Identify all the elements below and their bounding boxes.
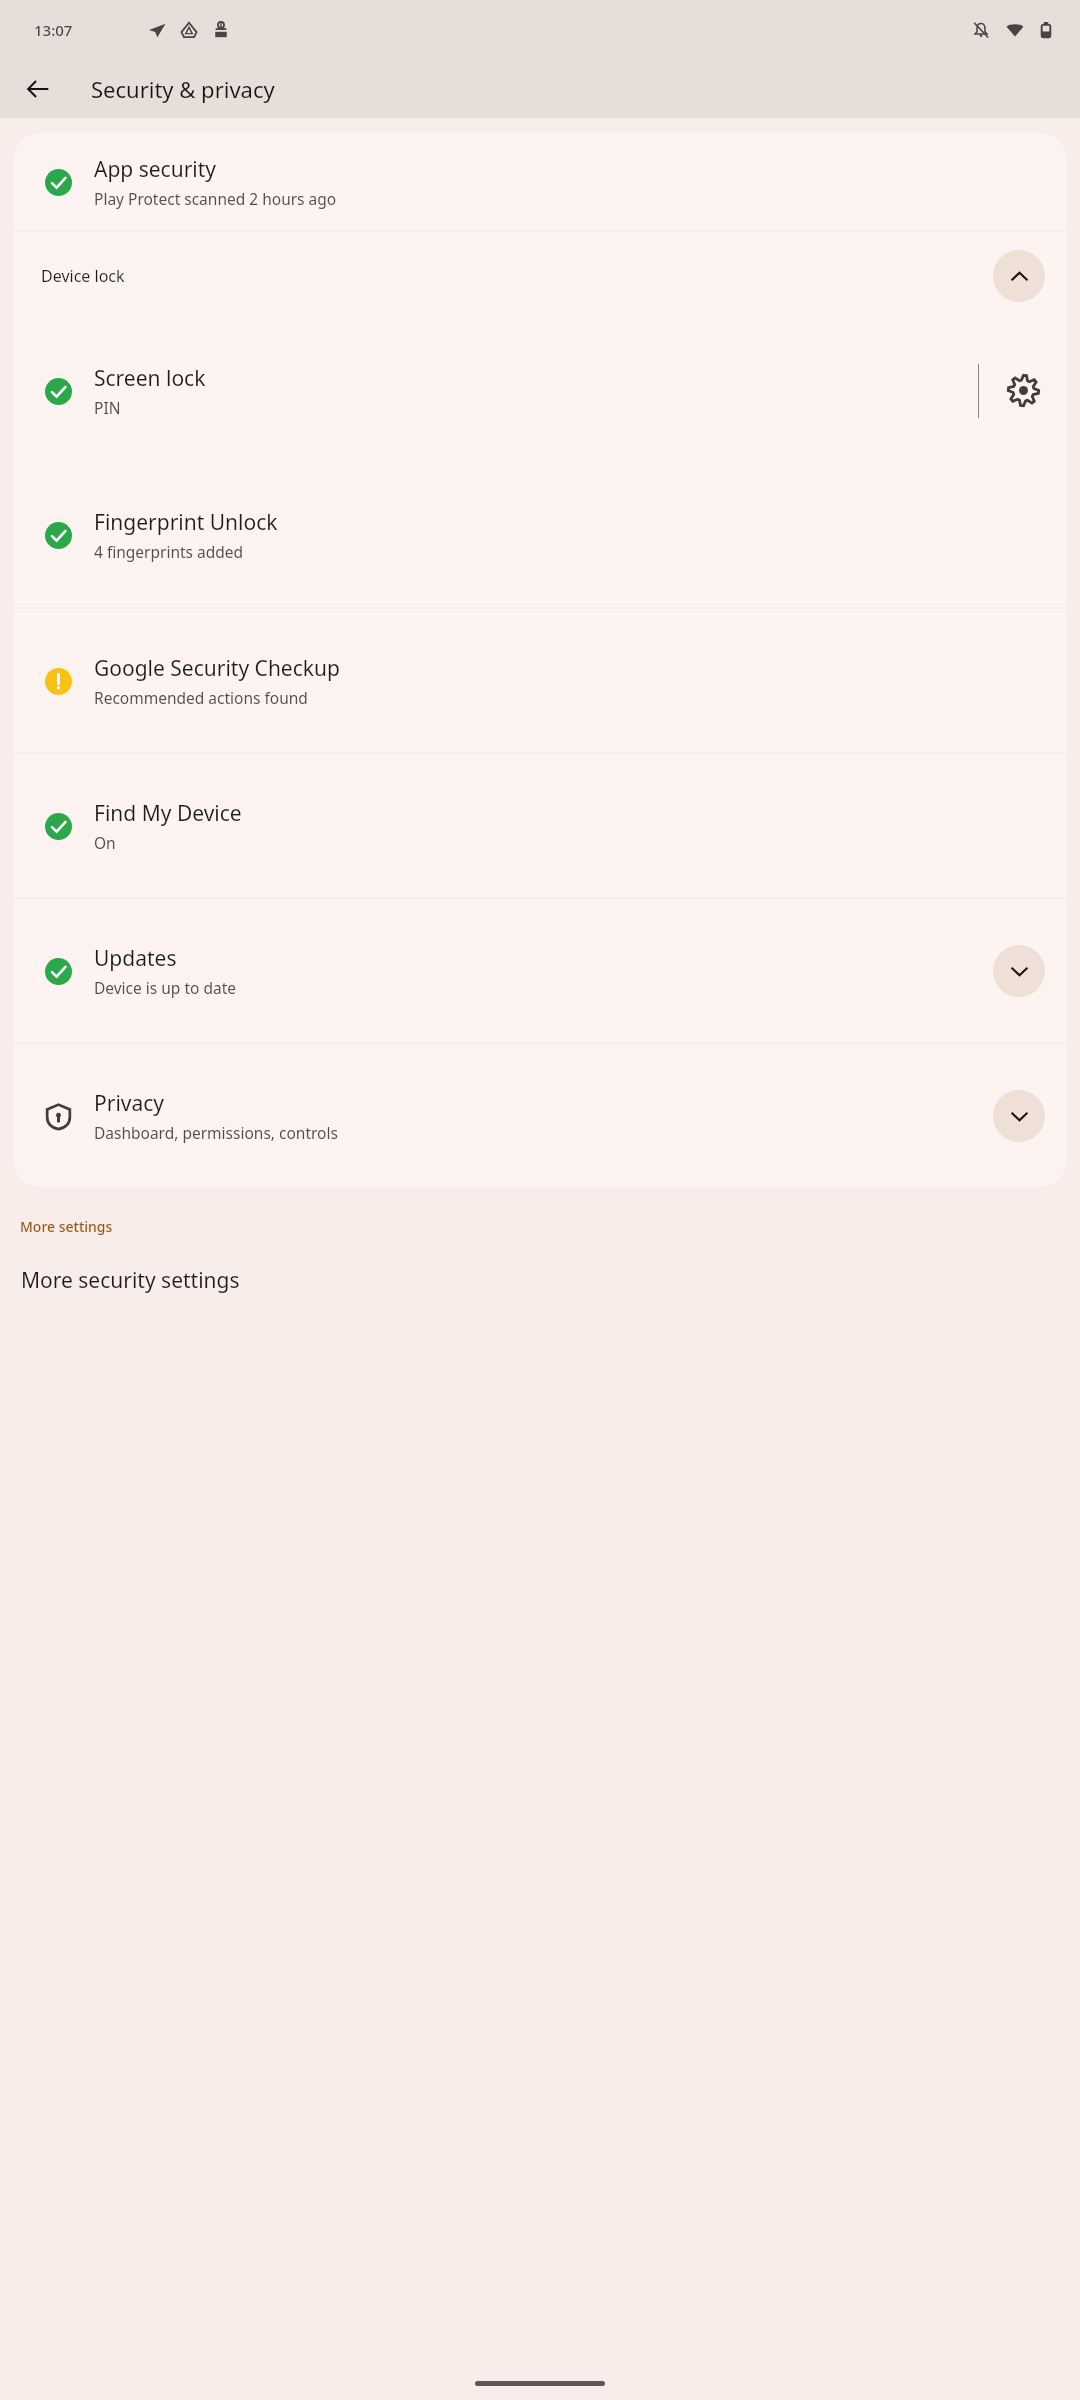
staticText: Device lock (41, 265, 125, 287)
button[interactable]: Google Security Checkup (13, 609, 1067, 752)
button[interactable]: More settings (20, 1215, 113, 1238)
staticText: Device is up to date (94, 977, 236, 998)
staticText: On (94, 832, 116, 853)
button[interactable]: App security (13, 133, 1067, 230)
staticText: 13:07 (34, 20, 73, 40)
staticText: Find My Device (94, 799, 242, 828)
staticText: Fingerprint Unlock (94, 508, 278, 537)
staticText: Privacy (94, 1089, 165, 1118)
button[interactable]: Expand Privacy (993, 1090, 1045, 1142)
staticText: More security settings (21, 1266, 240, 1295)
staticText: Screen lock (94, 364, 206, 393)
staticText: Dashboard, permissions, controls (94, 1122, 338, 1143)
staticText: PIN (94, 397, 121, 418)
button[interactable]: Updates (13, 899, 1067, 1042)
staticText: App security (94, 155, 217, 184)
staticText: Recommended actions found (94, 687, 308, 708)
staticText: Play Protect scanned 2 hours ago (94, 188, 337, 209)
button[interactable]: Back (12, 63, 64, 115)
button[interactable]: Screen lock (13, 319, 978, 462)
button[interactable]: Find My Device (13, 754, 1067, 897)
button[interactable]: Screen lock settings (979, 319, 1067, 462)
button[interactable]: Device lock (13, 232, 1067, 319)
button[interactable]: Collapse Device lock (993, 250, 1045, 302)
button[interactable]: Expand Updates (993, 945, 1045, 997)
staticText: 4 fingerprints added (94, 541, 244, 562)
staticText: Security & privacy (91, 74, 275, 104)
staticText: Updates (94, 944, 177, 973)
button[interactable]: Privacy (13, 1044, 1067, 1187)
staticText: Google Security Checkup (94, 654, 340, 683)
button[interactable]: Fingerprint Unlock (13, 462, 1067, 607)
